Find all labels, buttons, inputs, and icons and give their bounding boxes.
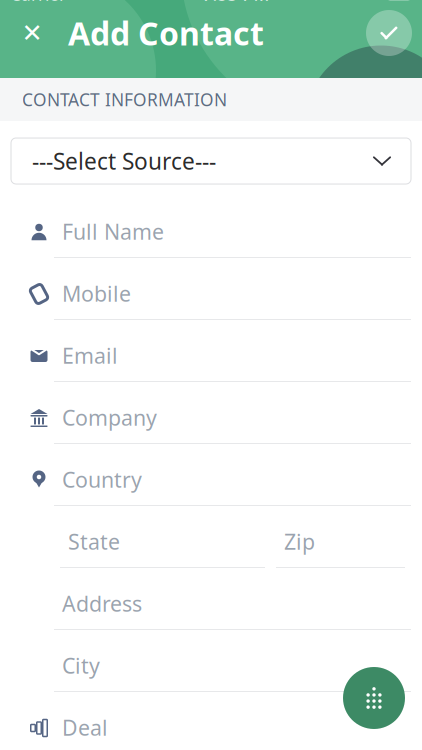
staticText: City [62,651,100,680]
staticText: Full Name [62,217,164,246]
button[interactable]: Mobile [0,263,422,325]
staticText: ✕ [21,19,42,47]
staticText: Company [62,403,157,432]
staticText: Mobile [62,279,131,308]
button[interactable]: Company [0,387,422,449]
staticText: CONTACT INFORMATION [22,88,227,111]
button[interactable]: Address [0,573,422,635]
button[interactable]: Close [10,7,54,59]
staticText: 7:53 PM [202,0,269,5]
staticText: Address [62,589,142,618]
staticText: Carrier [10,0,66,5]
staticText: Email [62,341,118,370]
button[interactable]: Full Name [0,201,422,263]
button[interactable]: Add Contact [54,7,264,59]
button[interactable]: Country [0,449,422,511]
button[interactable]: Save [363,7,415,59]
staticText: Add Contact [68,12,264,54]
button[interactable]: State [60,516,265,568]
button[interactable]: Deal [0,697,422,750]
staticText: ---Select Source--- [32,146,216,176]
staticText: Deal [62,713,108,742]
button[interactable]: More actions [343,667,405,729]
button[interactable]: Zip [276,516,405,568]
staticText: Country [62,465,142,494]
staticText: Zip [284,527,315,556]
staticText: State [68,527,120,556]
button[interactable]: City [0,635,422,697]
button[interactable]: ---Select Source--- [11,138,411,184]
button[interactable]: Email [0,325,422,387]
